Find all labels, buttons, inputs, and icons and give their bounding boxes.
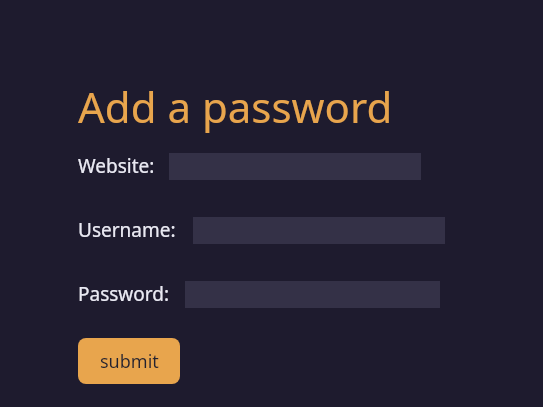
staticText: Add a password [78, 78, 393, 135]
staticText: submit [100, 349, 159, 374]
staticText: Password: [78, 281, 170, 307]
staticText: Username: [78, 217, 176, 243]
button[interactable]: submit [78, 338, 180, 384]
staticText: Website: [78, 153, 155, 179]
